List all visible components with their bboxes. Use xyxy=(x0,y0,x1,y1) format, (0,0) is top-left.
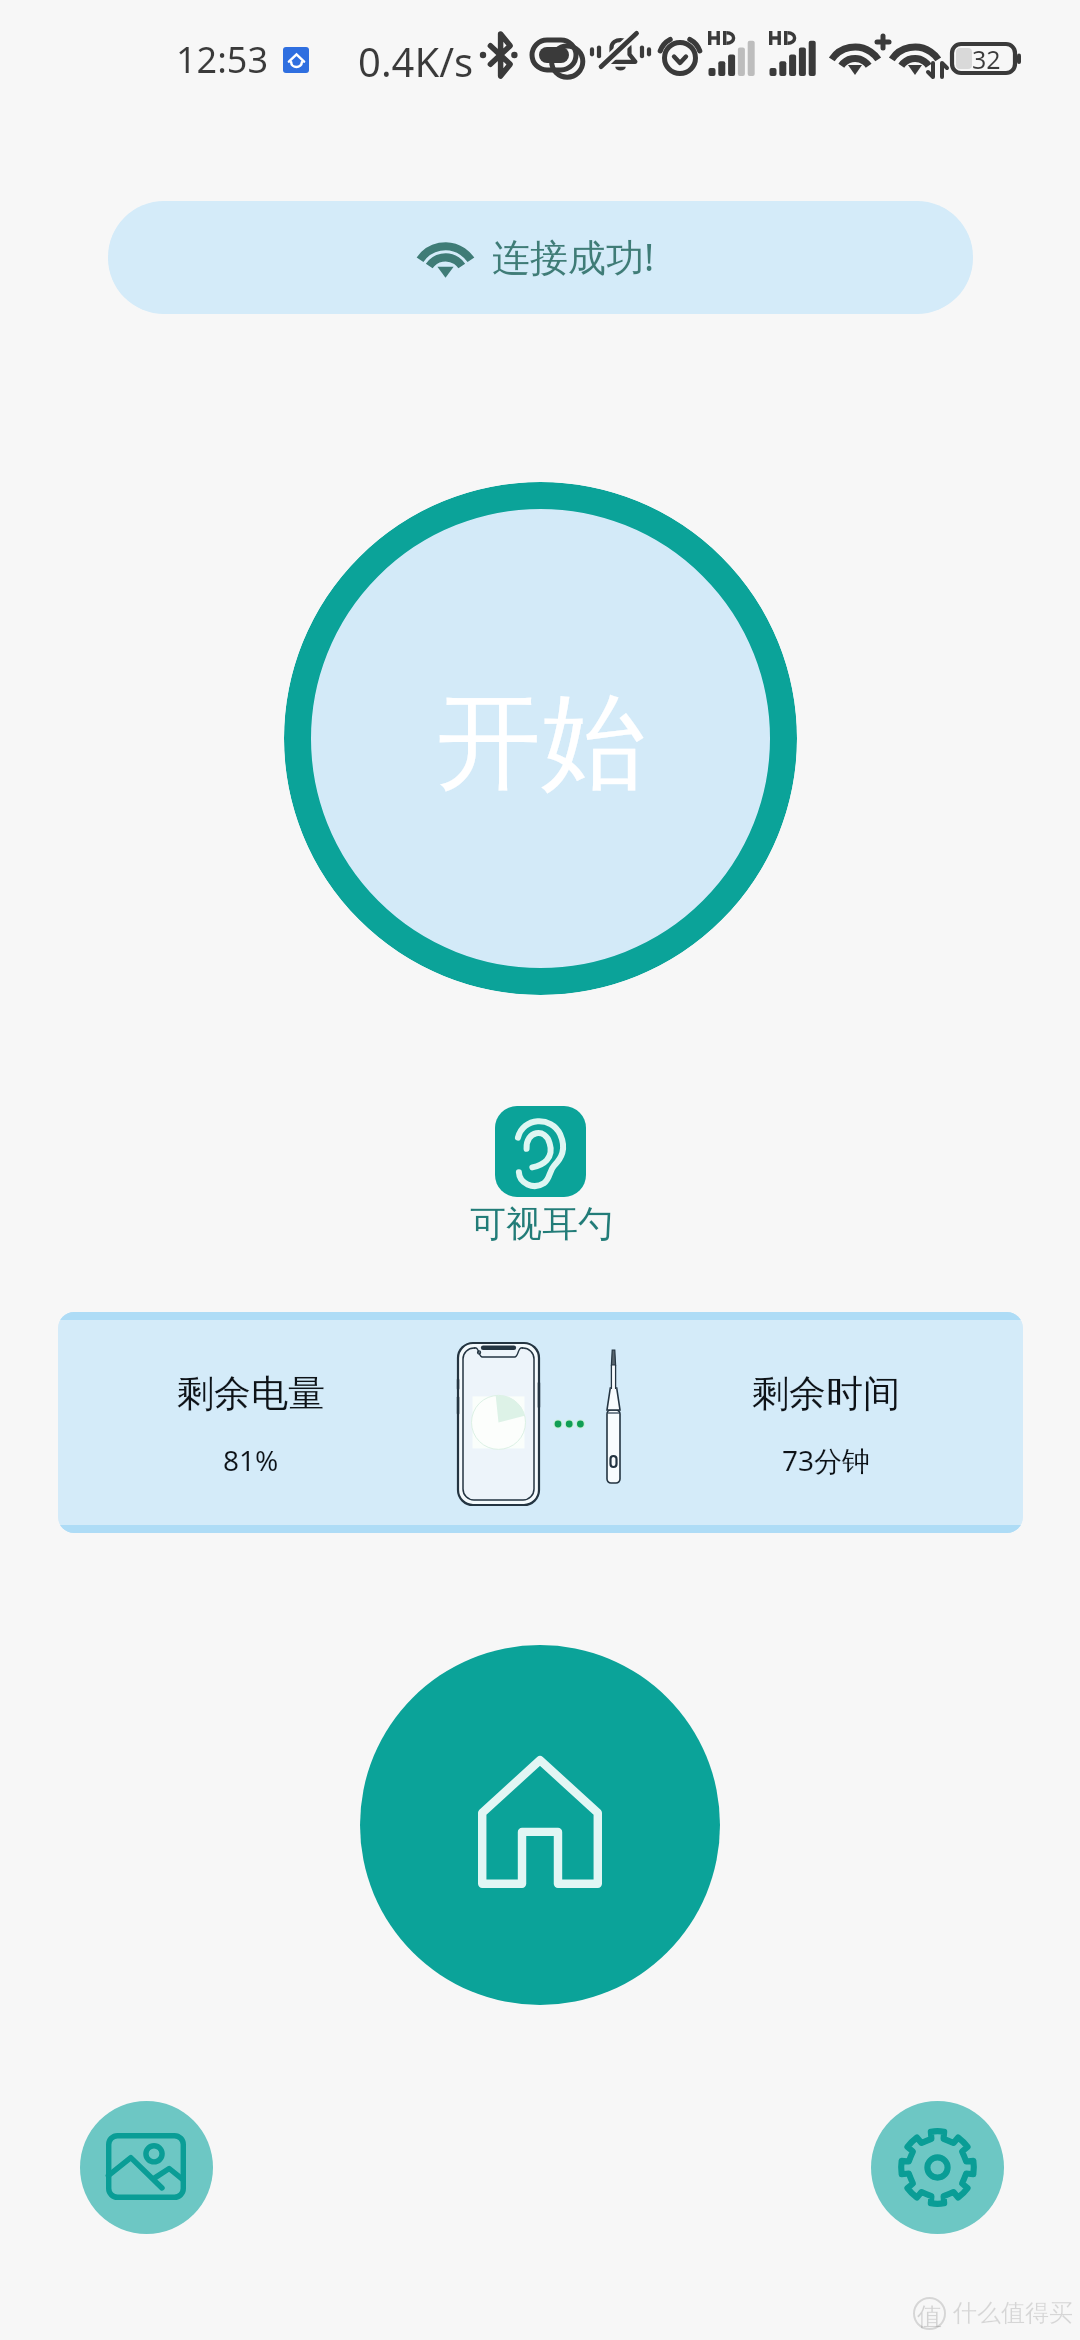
staticText: 0.4K/s xyxy=(358,34,474,88)
staticText: 值 xyxy=(917,2301,942,2332)
staticText: 81% xyxy=(223,1441,279,1479)
button[interactable]: Settings xyxy=(871,2101,1004,2234)
staticText: 32 xyxy=(972,42,1001,76)
button[interactable] xyxy=(495,1106,586,1197)
staticText: 12:53 xyxy=(176,35,269,84)
staticText: 连接成功! xyxy=(492,230,655,282)
staticText: 剩余电量 xyxy=(177,1370,325,1417)
button[interactable]: Gallery xyxy=(80,2101,213,2234)
staticText: 什么值得买 xyxy=(953,2298,1073,2328)
button[interactable] xyxy=(58,1312,1023,1533)
button[interactable]: 开始 xyxy=(284,482,797,995)
staticText: 剩余时间 xyxy=(752,1370,900,1417)
staticText: 开始 xyxy=(436,677,646,809)
staticText: 可视耳勺 xyxy=(470,1201,614,1246)
staticText: 73分钟 xyxy=(782,1441,871,1479)
button[interactable]: Home xyxy=(360,1645,720,2005)
button[interactable]: 连接成功! xyxy=(108,201,973,314)
